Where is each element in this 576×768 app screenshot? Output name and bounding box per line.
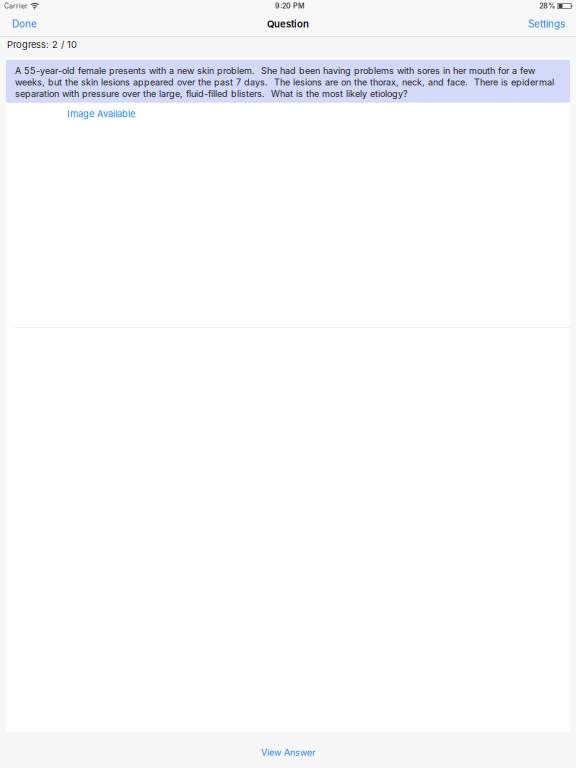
button[interactable]: Image Available [6, 103, 570, 125]
staticText: Settings [528, 18, 565, 30]
staticText: Done [12, 18, 37, 30]
staticText: Question [267, 18, 309, 30]
staticText: Image Available [67, 108, 135, 119]
staticText: View Answer [261, 747, 315, 758]
staticText: 9:20 PM [275, 2, 305, 10]
button[interactable]: View Answer [0, 732, 576, 768]
button[interactable]: Done [0, 12, 49, 35]
button[interactable]: Settings [517, 12, 576, 35]
staticText: Progress: 2 / 10 [7, 39, 77, 50]
staticText: Carrier [4, 2, 28, 10]
staticText: 28% [539, 2, 555, 10]
staticText: A 55-year-old female presents with a new… [15, 65, 554, 99]
